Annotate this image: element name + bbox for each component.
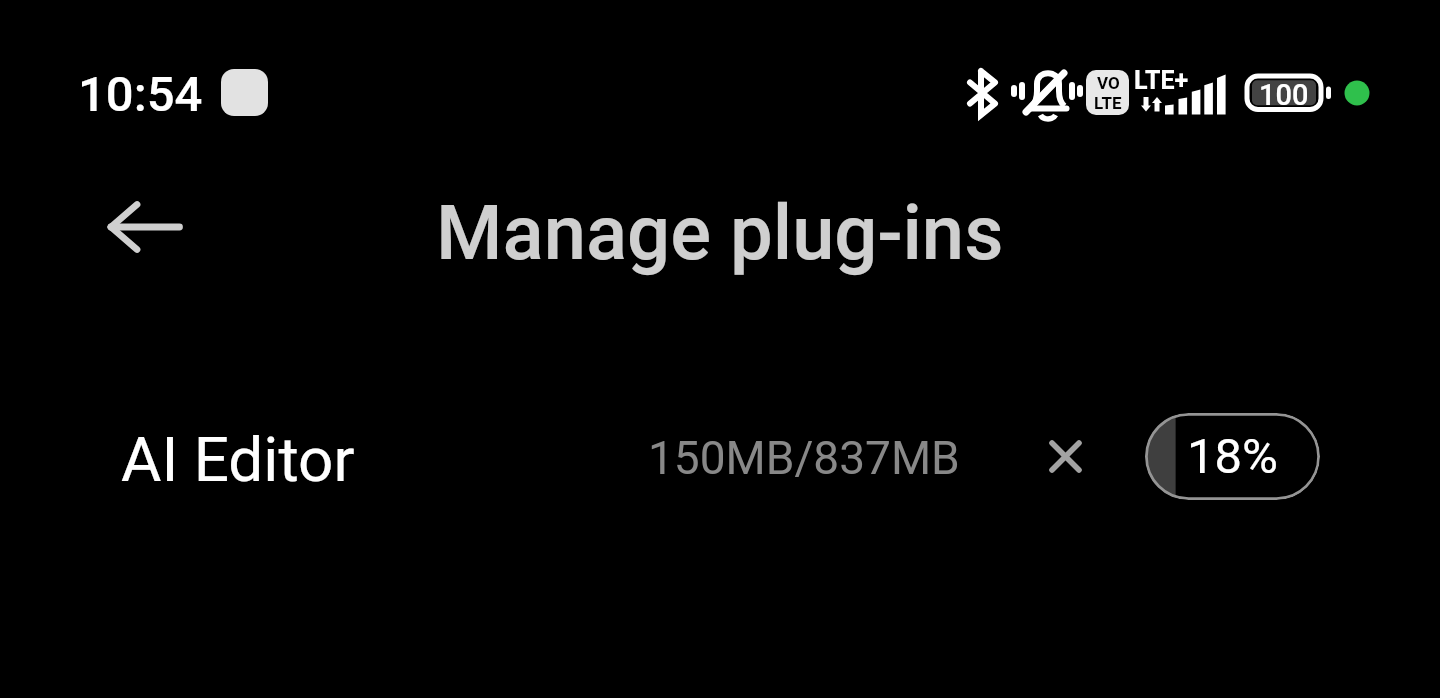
staticText: 18% xyxy=(1187,428,1278,485)
button[interactable]: AI Editor xyxy=(0,395,1440,505)
staticText: 100 xyxy=(1259,78,1309,112)
staticText: LTE xyxy=(1094,93,1122,113)
button[interactable]: 18% xyxy=(1145,413,1320,500)
staticText: LTE+ xyxy=(1134,66,1189,95)
staticText: VO xyxy=(1097,73,1120,93)
staticText: Manage plug-ins xyxy=(436,188,1004,277)
button[interactable]: Cancel download xyxy=(1033,424,1097,488)
staticText: AI Editor xyxy=(121,423,355,496)
staticText: 150MB/837MB xyxy=(648,431,960,485)
staticText: 10:54 xyxy=(78,66,203,123)
button[interactable]: Back xyxy=(76,174,182,280)
